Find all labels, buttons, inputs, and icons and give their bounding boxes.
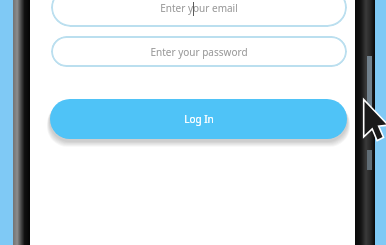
other: Pointer bbox=[362, 100, 386, 148]
button[interactable]: Enter your password bbox=[51, 36, 347, 67]
staticText: Enter your email bbox=[160, 1, 238, 15]
staticText: Enter your password bbox=[150, 45, 248, 59]
button[interactable]: Log In bbox=[50, 99, 347, 139]
button[interactable]: Enter your email bbox=[51, 0, 347, 27]
staticText: Log In bbox=[184, 112, 214, 126]
